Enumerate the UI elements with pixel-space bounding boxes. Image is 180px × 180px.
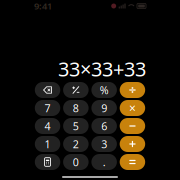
button[interactable]: %: [91, 82, 117, 98]
staticText: 6: [101, 119, 107, 133]
button[interactable]: Divide: [120, 82, 145, 98]
button[interactable]: 8: [63, 100, 89, 116]
button[interactable]: 6: [91, 118, 117, 134]
staticText: 0: [73, 155, 79, 169]
staticText: 3: [101, 137, 107, 151]
staticText: ×: [129, 100, 136, 116]
staticText: 5: [73, 119, 79, 133]
button[interactable]: 2: [63, 136, 89, 152]
button[interactable]: Minus: [120, 118, 145, 134]
button[interactable]: Calculator: [35, 154, 60, 170]
staticText: 4: [44, 119, 50, 133]
button[interactable]: 7: [35, 100, 60, 116]
staticText: 1: [44, 137, 50, 151]
button[interactable]: 3: [91, 136, 117, 152]
button[interactable]: 0: [63, 154, 89, 170]
button[interactable]: 4: [35, 118, 60, 134]
button[interactable]: 1: [35, 136, 60, 152]
button[interactable]: Delete: [35, 82, 60, 98]
button[interactable]: Plus: [120, 136, 145, 152]
button[interactable]: Plus minus: [63, 82, 89, 98]
staticText: 9:41: [34, 0, 52, 12]
staticText: .: [103, 155, 106, 169]
staticText: 7: [44, 101, 50, 115]
button[interactable]: Equals: [120, 154, 145, 170]
button[interactable]: 5: [63, 118, 89, 134]
staticText: 2: [73, 137, 79, 151]
button[interactable]: .: [91, 154, 117, 170]
button[interactable]: 9: [91, 100, 117, 116]
staticText: %: [100, 83, 109, 97]
button[interactable]: Multiply: [120, 100, 145, 116]
staticText: 33×33+33: [58, 55, 146, 82]
staticText: 9: [101, 101, 107, 115]
staticText: 8: [73, 101, 79, 115]
